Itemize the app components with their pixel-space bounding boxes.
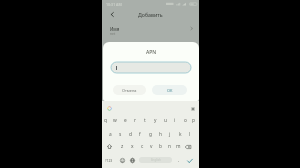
staticText: l <box>189 131 191 138</box>
button[interactable]: y <box>150 115 160 125</box>
staticText: v <box>150 143 153 150</box>
staticText: u <box>164 117 167 124</box>
staticText: English <box>151 158 161 162</box>
button[interactable]: Enter <box>184 154 195 167</box>
button[interactable]: d <box>125 129 135 139</box>
button[interactable]: ?123 <box>102 154 116 167</box>
staticText: o <box>184 117 187 124</box>
staticText: e <box>124 117 127 124</box>
button[interactable]: Settings <box>187 103 198 114</box>
button[interactable]: Google Search <box>104 103 115 114</box>
staticText: g <box>149 131 152 138</box>
button[interactable]: c <box>137 141 147 152</box>
button[interactable]: z <box>117 141 127 152</box>
staticText: net <box>110 31 116 36</box>
button[interactable]: p <box>190 115 197 125</box>
staticText: s <box>119 131 122 138</box>
button[interactable]: Имя <box>102 22 199 36</box>
button[interactable]: e <box>120 115 130 125</box>
staticText: . <box>178 157 180 164</box>
staticText: 10:31 AM <box>106 2 122 7</box>
button[interactable]: i <box>170 115 180 125</box>
button[interactable]: Backspace <box>181 141 195 152</box>
staticText: j <box>169 131 171 138</box>
button[interactable]: Back <box>105 9 119 21</box>
staticText: z <box>121 143 124 150</box>
staticText: b <box>159 143 162 150</box>
button[interactable]: Shift <box>102 141 117 152</box>
button[interactable]: n <box>165 141 174 152</box>
button[interactable]: OK <box>152 85 187 95</box>
staticText: w <box>113 117 117 124</box>
button[interactable]: h <box>155 129 165 139</box>
button[interactable]: g <box>145 129 155 139</box>
staticText: q <box>104 117 107 124</box>
staticText: Имя <box>110 26 120 32</box>
staticText: Отмена <box>122 88 137 93</box>
button[interactable]: j <box>165 129 175 139</box>
button[interactable]: k <box>175 129 185 139</box>
staticText: APN <box>103 49 199 56</box>
button[interactable]: f <box>135 129 145 139</box>
button[interactable]: l <box>185 129 195 139</box>
staticText: a <box>109 131 112 138</box>
button[interactable]: q <box>100 115 110 125</box>
button[interactable]: r <box>130 115 140 125</box>
staticText: r <box>134 117 136 124</box>
button[interactable]: t <box>140 115 150 125</box>
staticText: k <box>179 131 182 138</box>
button[interactable]: x <box>127 141 137 152</box>
staticText: t <box>144 117 146 124</box>
button[interactable]: o <box>180 115 190 125</box>
button[interactable]: Space <box>139 157 172 163</box>
staticText: d <box>129 131 132 138</box>
button[interactable]: Emoji <box>118 154 127 167</box>
staticText: h <box>159 131 162 138</box>
button[interactable]: a <box>105 129 115 139</box>
staticText: c <box>141 143 144 150</box>
staticText: p <box>192 117 195 124</box>
staticText: x <box>131 143 134 150</box>
button[interactable]: m <box>174 141 183 152</box>
button[interactable]: Отмена <box>113 85 146 95</box>
staticText: ?123 <box>105 158 113 163</box>
button[interactable]: . <box>174 154 183 167</box>
button[interactable]: v <box>147 141 156 152</box>
staticText: y <box>154 117 157 124</box>
button[interactable]: w <box>110 115 120 125</box>
staticText: i <box>174 117 176 124</box>
staticText: m <box>176 143 181 150</box>
button[interactable]: s <box>115 129 125 139</box>
staticText: Добавить <box>138 11 163 18</box>
button[interactable]: Change language <box>128 154 137 167</box>
button[interactable]: u <box>160 115 170 125</box>
button[interactable]: b <box>156 141 165 152</box>
staticText: n <box>168 143 171 150</box>
staticText: OK <box>167 88 173 93</box>
staticText: f <box>139 131 141 138</box>
